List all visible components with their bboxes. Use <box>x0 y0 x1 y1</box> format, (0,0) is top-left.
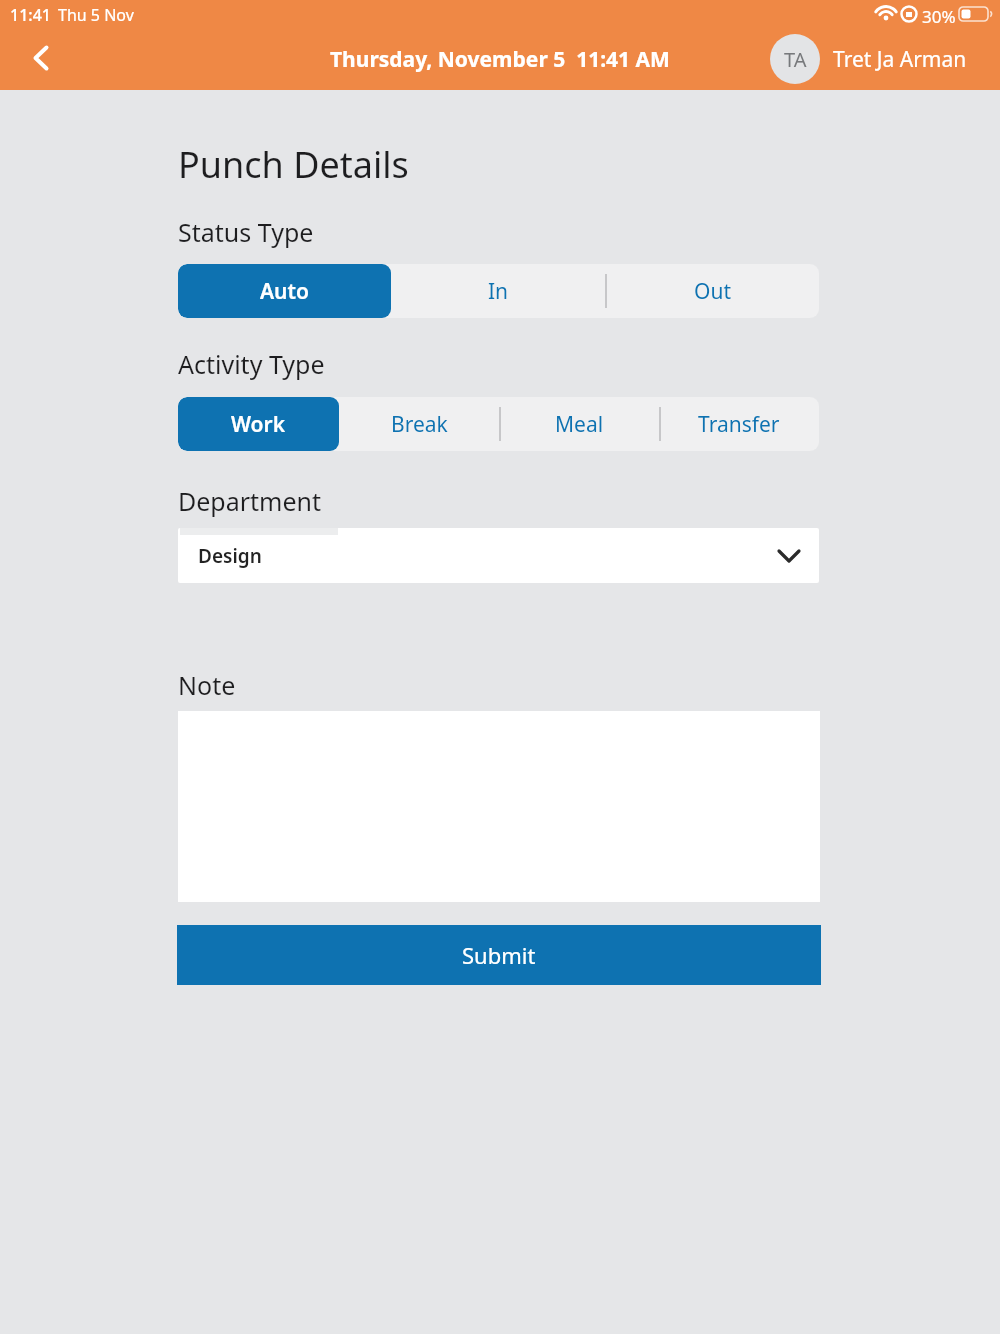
staticText: Punch Details <box>178 140 409 189</box>
staticText: Work <box>231 410 286 439</box>
button[interactable]: TA <box>770 28 967 90</box>
staticText: 30% <box>922 5 956 28</box>
staticText: Note <box>178 668 236 702</box>
staticText: TA <box>784 46 807 73</box>
button[interactable]: Transfer <box>659 397 819 451</box>
button[interactable]: Auto <box>178 264 391 318</box>
staticText: Department <box>178 484 322 518</box>
staticText: Auto <box>260 277 309 306</box>
staticText: Transfer <box>698 410 780 439</box>
staticText: Submit <box>462 940 536 970</box>
button[interactable] <box>16 36 66 80</box>
button[interactable]: Submit <box>177 925 821 985</box>
button[interactable]: Meal <box>499 397 659 451</box>
staticText: Design <box>198 543 262 569</box>
button[interactable]: Out <box>605 264 819 318</box>
staticText: Break <box>391 410 448 439</box>
button[interactable]: Work <box>178 397 339 451</box>
staticText: In <box>488 277 509 306</box>
staticText: Out <box>694 277 731 306</box>
staticText: Tret Ja Arman <box>833 45 967 74</box>
staticText: 11:41 <box>10 4 51 26</box>
button[interactable]: Break <box>339 397 499 451</box>
button[interactable]: In <box>391 264 605 318</box>
staticText: Status Type <box>178 215 314 249</box>
staticText: Activity Type <box>178 347 325 381</box>
staticText: Thu 5 Nov <box>58 4 134 26</box>
staticText: Thursday, November 5 11:41 AM <box>330 45 670 74</box>
staticText: Meal <box>555 410 604 439</box>
button[interactable]: Design <box>178 528 819 583</box>
